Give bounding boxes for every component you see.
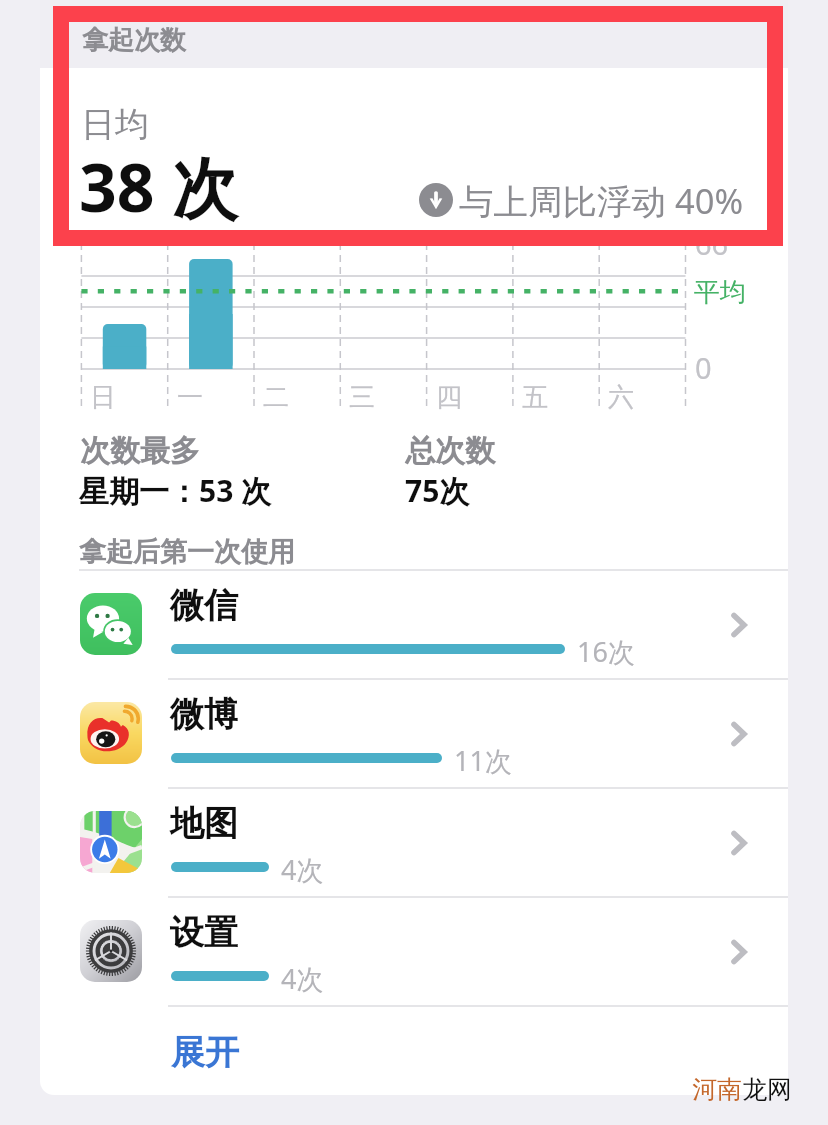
staticText: 0 xyxy=(695,348,712,387)
button[interactable]: 拿起次数 xyxy=(40,0,788,68)
staticText: 66 xyxy=(695,224,729,263)
staticText: 地图 xyxy=(170,802,238,845)
staticText: 总次数 xyxy=(405,432,495,470)
staticText: 展开 xyxy=(171,1031,239,1074)
other: 查看详情 xyxy=(724,828,754,858)
staticText: 16次 xyxy=(577,633,635,670)
staticText: 龙网 xyxy=(742,1074,792,1105)
staticText: 日均 xyxy=(81,103,149,146)
staticText: 三 xyxy=(349,381,375,414)
staticText: 4次 xyxy=(281,960,324,997)
button[interactable]: 地图 xyxy=(79,788,788,897)
other: 查看详情 xyxy=(724,937,754,967)
other: 较上周下降 xyxy=(419,183,453,217)
staticText: 五 xyxy=(522,381,548,414)
staticText: 四 xyxy=(436,381,462,414)
staticText: 微博 xyxy=(170,693,238,736)
staticText: 拿起次数 xyxy=(82,24,186,57)
staticText: 星期一：53 次 xyxy=(79,470,272,511)
staticText: 二 xyxy=(263,381,289,414)
button[interactable]: 展开 xyxy=(79,1006,788,1095)
button[interactable]: 日均 xyxy=(40,68,788,230)
staticText: 微信 xyxy=(170,584,238,627)
staticText: 11次 xyxy=(454,742,512,779)
staticText: 38 次 xyxy=(79,141,238,231)
staticText: 75次 xyxy=(405,470,470,511)
staticText: 次数最多 xyxy=(80,432,200,470)
button[interactable]: 设置 xyxy=(79,897,788,1006)
staticText: 六 xyxy=(608,381,634,414)
staticText: 日 xyxy=(90,381,116,414)
staticText: 平均 xyxy=(694,276,746,309)
staticText: 一 xyxy=(177,381,203,414)
other: 查看详情 xyxy=(724,719,754,749)
staticText: 拿起后第一次使用 xyxy=(79,535,295,569)
button[interactable]: 微博 xyxy=(79,679,788,788)
staticText: 4次 xyxy=(281,851,324,888)
staticText: 河南 xyxy=(692,1074,742,1105)
other: 查看详情 xyxy=(724,610,754,640)
staticText: 设置 xyxy=(170,911,238,954)
staticText: 与上周比浮动 40% xyxy=(459,177,744,224)
button[interactable]: 微信 xyxy=(79,570,788,679)
